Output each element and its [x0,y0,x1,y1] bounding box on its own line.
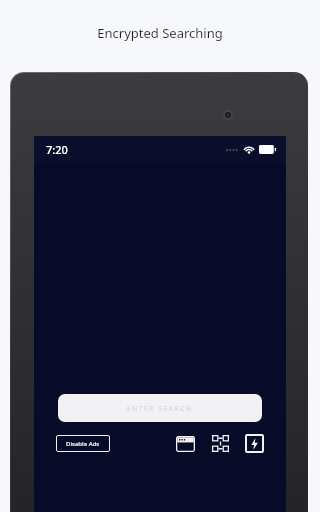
staticText: ENTER SEARCH [127,404,193,413]
button[interactable]: Browser tabs [175,433,196,454]
button[interactable]: Turbo mode [245,434,264,453]
button[interactable]: ENTER SEARCH [58,394,262,422]
staticText: 7:20 [46,142,68,157]
button[interactable]: Scan QR code [210,433,231,454]
staticText: Encrypted Searching [0,24,320,42]
staticText: Disable Ads [66,440,100,448]
button[interactable]: Disable Ads [56,435,110,452]
